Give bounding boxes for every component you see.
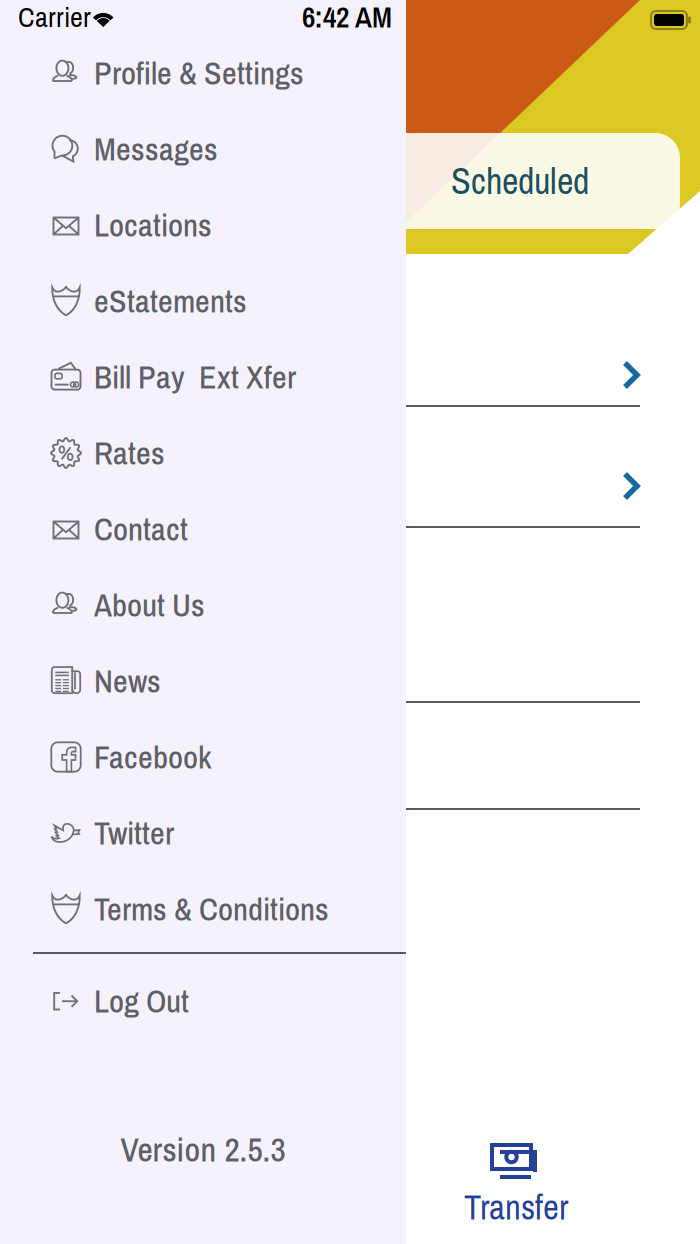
staticText: Carrier	[18, 0, 91, 36]
button[interactable]: Locations	[0, 187, 406, 263]
staticText: Messages	[94, 127, 218, 170]
staticText: eStatements	[94, 279, 247, 322]
staticText: Version 2.5.3	[120, 1127, 285, 1172]
staticText: Locations	[94, 203, 212, 246]
button[interactable]: Log Out	[0, 963, 406, 1039]
staticText: Twitter	[94, 811, 174, 854]
staticText: Log Out	[94, 979, 189, 1022]
staticText: Terms & Conditions	[94, 887, 329, 930]
staticText: Bill Pay Ext Xfer	[94, 355, 296, 398]
button[interactable]: Messages	[0, 111, 406, 187]
button[interactable]: Terms & Conditions	[0, 871, 406, 947]
button[interactable]: Contact	[0, 491, 406, 567]
button[interactable]: Profile & Settings	[0, 35, 406, 111]
button[interactable]: About Us	[0, 567, 406, 643]
staticText: Contact	[94, 507, 188, 550]
staticText: Scheduled	[451, 157, 589, 205]
button[interactable]: News	[0, 643, 406, 719]
button[interactable]: eStatements	[0, 263, 406, 339]
button[interactable]: Rates	[0, 415, 406, 491]
staticText: 6:42 AM	[302, 0, 392, 37]
staticText: About Us	[94, 583, 205, 626]
button[interactable]: Twitter	[0, 795, 406, 871]
button[interactable]: Bill Pay Ext Xfer	[0, 339, 406, 415]
button[interactable]: Transfer	[426, 1131, 606, 1235]
button[interactable]: Scheduled	[360, 133, 680, 229]
staticText: News	[94, 659, 161, 702]
staticText: Facebook	[94, 735, 212, 778]
button[interactable]: Facebook	[0, 719, 406, 795]
staticText: Profile & Settings	[94, 51, 304, 94]
staticText: Rates	[94, 431, 165, 474]
staticText: Transfer	[464, 1184, 568, 1230]
